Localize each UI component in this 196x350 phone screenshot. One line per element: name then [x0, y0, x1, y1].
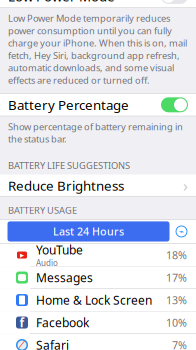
button[interactable]: ⟋: [0, 334, 196, 350]
staticText: Low Power Mode: [8, 0, 115, 5]
staticText: f: [19, 315, 24, 330]
staticText: 10%: [166, 315, 187, 330]
button[interactable]: Low Power Mode: [0, 0, 196, 8]
button[interactable]: Reduce Brightness: [0, 174, 196, 196]
button[interactable]: Last 24 Hours: [7, 221, 169, 242]
staticText: Show percentage of battery remaining in …: [8, 120, 183, 145]
staticText: Audio: [36, 258, 58, 268]
staticText: Battery Percentage: [8, 96, 129, 114]
button[interactable]: ▶: [0, 244, 196, 266]
staticText: ⌁: [179, 227, 184, 236]
button[interactable]: f: [0, 312, 196, 334]
button[interactable]: Home & Lock Screen: [0, 289, 196, 311]
button[interactable]: Battery Percentage: [0, 93, 196, 116]
button[interactable]: Show battery usage by time: [174, 224, 188, 238]
staticText: Low Power Mode temporarily reduces power…: [8, 12, 187, 86]
staticText: BATTERY LIFE SUGGESTIONS: [8, 159, 130, 171]
staticText: Last 24 Hours: [53, 224, 124, 239]
staticText: 7%: [172, 338, 187, 350]
staticText: ▶: [20, 252, 24, 258]
staticText: Messages: [36, 270, 93, 285]
staticText: Reduce Brightness: [8, 177, 124, 194]
staticText: ⟋: [18, 340, 25, 350]
staticText: 13%: [166, 293, 187, 307]
staticText: BATTERY USAGE: [8, 204, 77, 216]
staticText: YouTube: [36, 242, 83, 258]
staticText: Home & Lock Screen: [36, 292, 152, 308]
staticText: 17%: [166, 270, 187, 285]
button[interactable]: Messages: [0, 267, 196, 289]
staticText: ›: [183, 175, 188, 196]
staticText: Facebook: [36, 315, 89, 330]
staticText: Safari: [36, 337, 69, 350]
staticText: 18%: [166, 248, 187, 262]
